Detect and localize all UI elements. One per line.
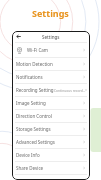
button[interactable]: Motion Detection [12,58,90,70]
staticText: Share Device [16,165,44,171]
button[interactable]: Share Device [12,162,90,174]
button[interactable]: Back [14,32,23,41]
staticText: Recording Setting [16,87,54,93]
staticText: Direction Control [16,113,52,119]
staticText: Motion Detection [16,61,53,67]
staticText: Continuous recording [54,88,86,92]
button[interactable]: Storage Settings [12,123,90,135]
button[interactable]: Advanced Settings [12,136,90,148]
staticText: Advanced Settings [16,139,55,145]
button[interactable]: Direction Control [12,110,90,122]
staticText: Settings [32,7,69,19]
staticText: Device Info [16,152,40,158]
button[interactable]: Notifications [12,71,90,83]
staticText: Settings [42,34,60,40]
button[interactable]: Wi-Fi Cam [12,43,90,57]
staticText: Storage Settings [16,126,51,132]
staticText: Wi-Fi Cam [27,47,49,53]
staticText: Image Setting [16,100,46,106]
button[interactable]: Image Setting [12,97,90,109]
staticText: Notifications [16,74,43,80]
button[interactable]: Device Info [12,149,90,161]
button[interactable]: Recording Setting [12,84,90,96]
